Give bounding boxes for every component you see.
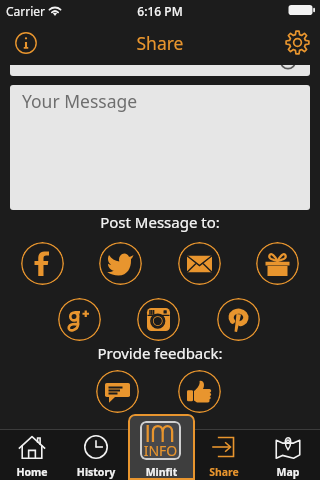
button[interactable]: Twitter bbox=[99, 242, 142, 285]
staticText: Post Message to: bbox=[0, 212, 320, 232]
staticText: Minfit bbox=[128, 465, 195, 479]
button[interactable]: Info bbox=[11, 28, 41, 58]
button[interactable] bbox=[10, 65, 310, 76]
staticText: Share bbox=[0, 31, 320, 55]
button[interactable]: Facebook bbox=[21, 242, 64, 285]
staticText: Share bbox=[192, 465, 256, 479]
staticText: 6:16 PM bbox=[0, 3, 320, 19]
button[interactable]: Map bbox=[256, 430, 320, 480]
staticText: Your Message bbox=[22, 89, 138, 113]
staticText: INFO bbox=[140, 441, 181, 460]
button[interactable]: History bbox=[64, 430, 128, 480]
button[interactable]: Email bbox=[178, 242, 221, 285]
staticText: Map bbox=[256, 465, 320, 479]
staticText: Provide feedback: bbox=[0, 343, 320, 363]
button[interactable]: Google Plus bbox=[58, 298, 101, 341]
staticText: Home bbox=[0, 465, 64, 479]
button[interactable]: Home bbox=[0, 430, 64, 480]
staticText: History bbox=[64, 465, 128, 479]
button[interactable]: Comment bbox=[96, 370, 139, 413]
button[interactable]: Settings bbox=[282, 28, 313, 59]
button[interactable]: Gift bbox=[256, 242, 299, 285]
staticText: Carrier bbox=[6, 3, 46, 19]
button[interactable]: Thumbs up bbox=[178, 370, 221, 413]
button[interactable]: INFO bbox=[128, 414, 195, 480]
button[interactable]: Share bbox=[192, 430, 256, 480]
button[interactable]: Pinterest bbox=[217, 298, 260, 341]
button[interactable]: Your Message bbox=[10, 85, 310, 210]
button[interactable]: Instagram bbox=[137, 298, 180, 341]
